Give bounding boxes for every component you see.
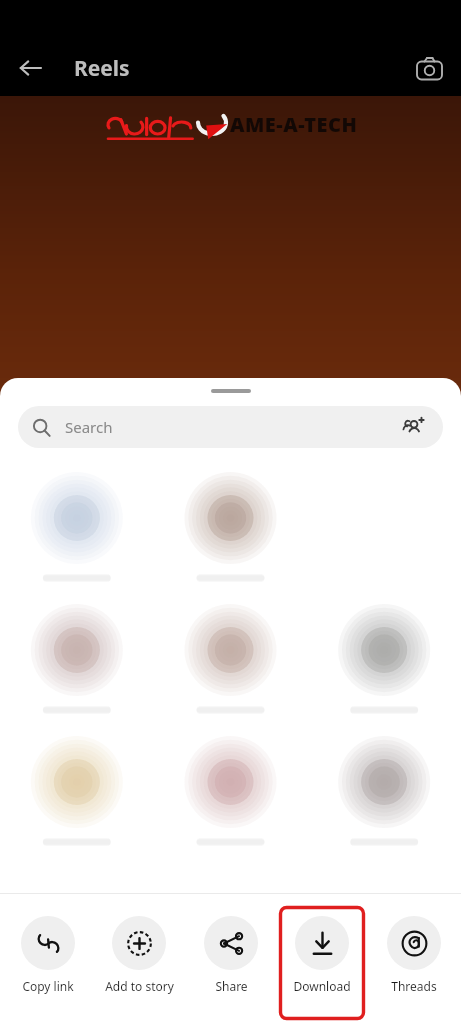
staticText: Download xyxy=(293,978,351,994)
button[interactable]: Add people xyxy=(399,412,429,442)
button[interactable]: Copy link xyxy=(5,906,91,994)
button[interactable]: Back xyxy=(8,46,52,90)
button[interactable] xyxy=(0,458,461,888)
staticText: AME-A-TECH xyxy=(230,111,358,138)
staticText: Reels xyxy=(74,54,130,83)
button[interactable]: Camera xyxy=(407,46,451,90)
staticText: Threads xyxy=(391,978,437,994)
staticText: Copy link xyxy=(22,978,74,994)
button[interactable]: Search xyxy=(18,406,443,448)
staticText: Search xyxy=(65,417,113,437)
button[interactable]: Add to story xyxy=(96,906,182,994)
staticText: Add to story xyxy=(105,978,174,994)
button[interactable]: Share xyxy=(188,906,274,994)
button[interactable]: Download xyxy=(279,906,365,994)
button[interactable]: Threads xyxy=(371,906,457,994)
staticText: Share xyxy=(215,978,248,994)
